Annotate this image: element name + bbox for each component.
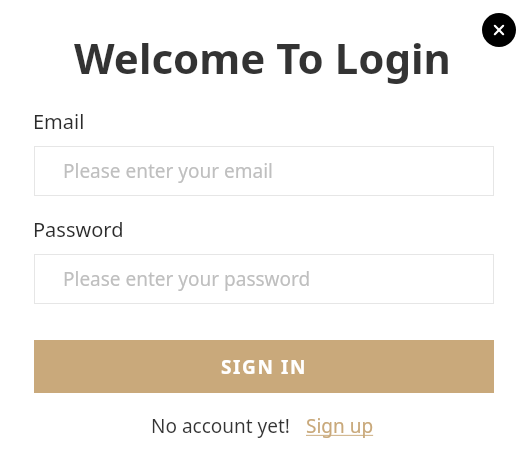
staticText: Please enter your email: [63, 158, 274, 184]
button[interactable]: Close: [482, 13, 516, 47]
staticText: Welcome To Login: [74, 29, 451, 86]
staticText: Sign up: [306, 413, 374, 439]
staticText: SIGN IN: [221, 354, 308, 380]
button[interactable]: Please enter your email: [34, 146, 494, 196]
staticText: No account yet!: [151, 413, 290, 439]
staticText: Email: [33, 108, 85, 135]
button[interactable]: Sign up: [306, 413, 374, 439]
button[interactable]: SIGN IN: [34, 340, 494, 393]
staticText: Please enter your password: [63, 266, 311, 292]
button[interactable]: Please enter your password: [34, 254, 494, 304]
staticText: Password: [33, 216, 124, 243]
